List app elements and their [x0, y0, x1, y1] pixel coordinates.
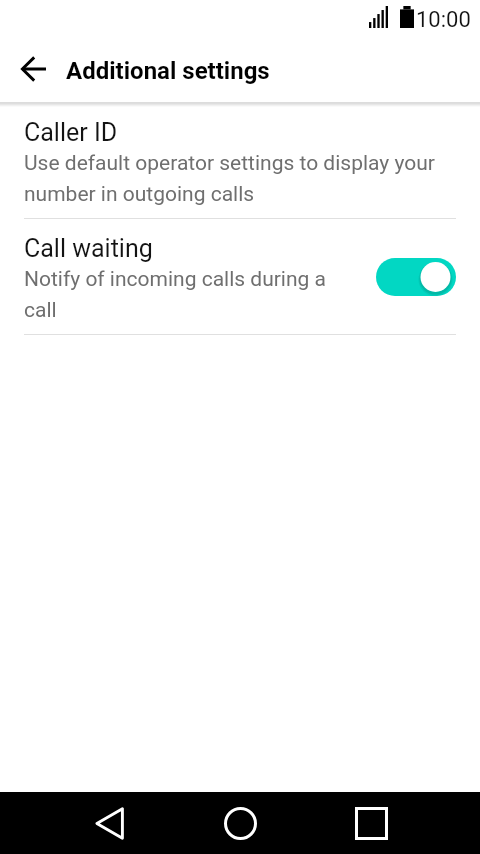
button[interactable]: Home — [210, 792, 270, 854]
button[interactable]: Back — [79, 792, 139, 854]
button[interactable]: Call waiting — [376, 258, 456, 296]
staticText: Additional settings — [66, 57, 270, 85]
staticText: Use default operator settings to display… — [24, 151, 456, 206]
button[interactable]: Caller ID — [0, 103, 480, 219]
button[interactable]: Call waiting — [0, 219, 480, 335]
staticText: Notify of incoming calls during a call — [24, 267, 360, 322]
staticText: Caller ID — [24, 118, 118, 147]
button[interactable]: Navigate up — [9, 45, 57, 93]
staticText: 10:00 — [416, 7, 471, 33]
staticText: Call waiting — [24, 234, 153, 263]
button[interactable]: Recent apps — [341, 792, 401, 854]
